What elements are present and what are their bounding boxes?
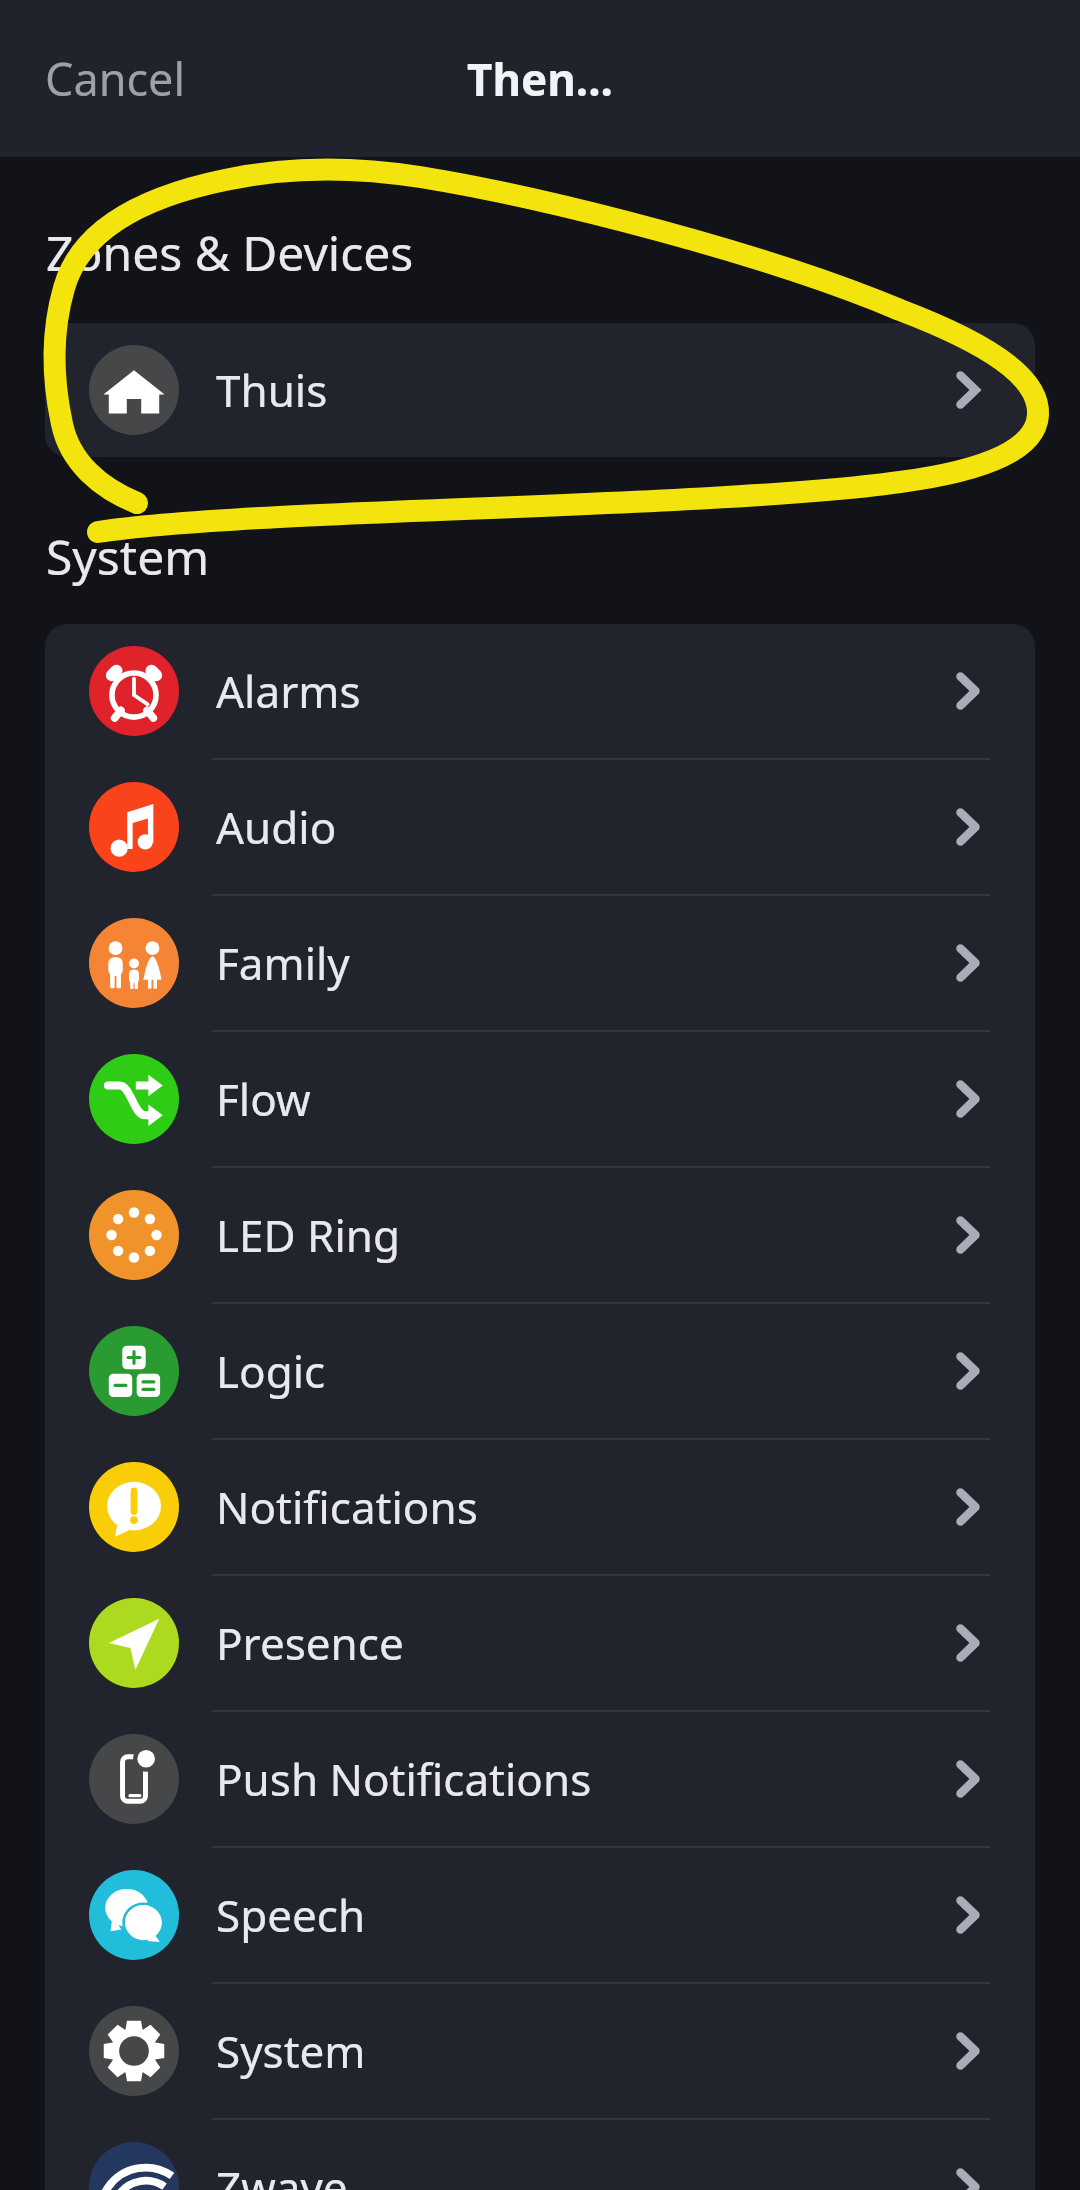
staticText: Logic (216, 1341, 326, 1401)
staticText: Thuis (216, 360, 328, 420)
staticText: LED Ring (216, 1205, 401, 1265)
button[interactable]: Family (45, 896, 1035, 1030)
button[interactable]: Presence (45, 1576, 1035, 1710)
button[interactable]: Push Notifications (45, 1712, 1035, 1846)
button[interactable]: Speech (45, 1848, 1035, 1982)
button[interactable]: Logic (45, 1304, 1035, 1438)
button[interactable]: Alarms (45, 624, 1035, 758)
staticText: System (46, 524, 210, 589)
staticText: Then... (467, 49, 613, 109)
staticText: System (216, 2021, 366, 2081)
staticText: Zones & Devices (46, 220, 414, 285)
button[interactable]: System (45, 1984, 1035, 2118)
staticText: Alarms (216, 661, 361, 721)
button[interactable]: Flow (45, 1032, 1035, 1166)
button[interactable]: LED Ring (45, 1168, 1035, 1302)
button[interactable]: Audio (45, 760, 1035, 894)
button[interactable]: Notifications (45, 1440, 1035, 1574)
staticText: Notifications (216, 1477, 478, 1537)
staticText: Push Notifications (216, 1749, 592, 1809)
button[interactable]: Cancel (23, 30, 208, 127)
staticText: Presence (216, 1613, 404, 1673)
button[interactable]: Zwave (45, 2120, 1035, 2190)
staticText: Flow (216, 1069, 311, 1129)
staticText: Audio (216, 797, 337, 857)
button[interactable]: Thuis (45, 323, 1035, 457)
staticText: Family (216, 933, 350, 993)
staticText: Cancel (45, 48, 186, 109)
staticText: Zwave (216, 2157, 348, 2190)
staticText: Speech (216, 1885, 366, 1945)
